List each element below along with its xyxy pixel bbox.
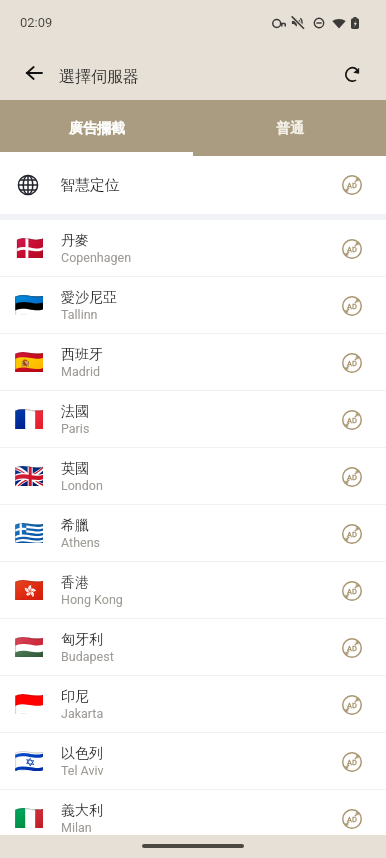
staticText: Jakarta (61, 706, 104, 721)
staticText: 🇫🇷 (14, 405, 43, 429)
staticText: AD (347, 181, 357, 190)
staticText: London (61, 478, 103, 493)
button[interactable]: 🇪🇪 (0, 277, 386, 334)
staticText: 🇪🇸 (14, 348, 43, 372)
staticText: AD (347, 302, 357, 311)
staticText: 🇮🇩 (14, 690, 43, 714)
staticText: AD (347, 473, 357, 482)
staticText: 英國 (61, 460, 89, 478)
staticText: 印尼 (61, 688, 89, 706)
staticText: 西班牙 (61, 346, 103, 364)
staticText: 香港 (61, 574, 89, 592)
staticText: AD (347, 245, 357, 254)
button[interactable]: 🇭🇰 (0, 562, 386, 619)
staticText: 🇮🇱 (14, 747, 43, 771)
staticText: Madrid (61, 364, 101, 379)
staticText: Tel Aviv (61, 763, 104, 778)
staticText: 選擇伺服器 (59, 67, 139, 87)
staticText: 🇭🇰 (14, 576, 43, 600)
staticText: 匈牙利 (61, 631, 103, 649)
staticText: AD (347, 587, 357, 596)
staticText: 02:09 (20, 15, 53, 30)
staticText: 以色列 (61, 745, 103, 763)
staticText: 🇮🇹 (14, 804, 43, 828)
staticText: 丹麥 (61, 232, 89, 250)
button[interactable]: 🇮🇹 (0, 790, 386, 847)
button[interactable]: 🇩🇰 (0, 220, 386, 277)
button[interactable]: Refresh (332, 54, 372, 94)
button[interactable]: 🇮🇩 (0, 676, 386, 733)
staticText: Paris (61, 421, 90, 436)
staticText: Hong Kong (61, 592, 123, 607)
button[interactable]: 🇬🇧 (0, 448, 386, 505)
staticText: Copenhagen (61, 250, 132, 265)
staticText: AD (347, 644, 357, 653)
staticText: 🇬🇧 (14, 462, 43, 486)
staticText: AD (347, 701, 357, 710)
staticText: AD (347, 758, 357, 767)
button[interactable]: 智慧定位 (0, 156, 386, 214)
staticText: 義大利 (61, 802, 103, 820)
staticText: Athens (61, 535, 101, 550)
button[interactable]: 🇬🇷 (0, 505, 386, 562)
button[interactable]: 🇫🇷 (0, 391, 386, 448)
button[interactable]: 廣告攔截 (0, 100, 193, 156)
staticText: 法國 (61, 403, 89, 421)
button[interactable]: 🇭🇺 (0, 619, 386, 676)
staticText: 智慧定位 (60, 176, 120, 195)
staticText: 🇩🇰 (14, 234, 43, 258)
staticText: Budapest (61, 649, 114, 664)
button[interactable]: 🇮🇱 (0, 733, 386, 790)
staticText: 希臘 (61, 517, 89, 535)
staticText: 🇬🇷 (14, 519, 43, 543)
staticText: 愛沙尼亞 (61, 289, 117, 307)
staticText: AD (347, 815, 357, 824)
staticText: Milan (61, 820, 92, 835)
button[interactable]: Back (14, 53, 54, 93)
staticText: 廣告攔截 (69, 120, 125, 138)
button[interactable]: 🇪🇸 (0, 334, 386, 391)
staticText: AD (347, 416, 357, 425)
staticText: 🇪🇪 (14, 291, 43, 315)
staticText: AD (347, 530, 357, 539)
button[interactable]: 普通 (193, 100, 386, 156)
staticText: AD (347, 359, 357, 368)
staticText: 普通 (276, 120, 304, 138)
staticText: 🇭🇺 (14, 633, 43, 657)
staticText: Tallinn (61, 307, 98, 322)
